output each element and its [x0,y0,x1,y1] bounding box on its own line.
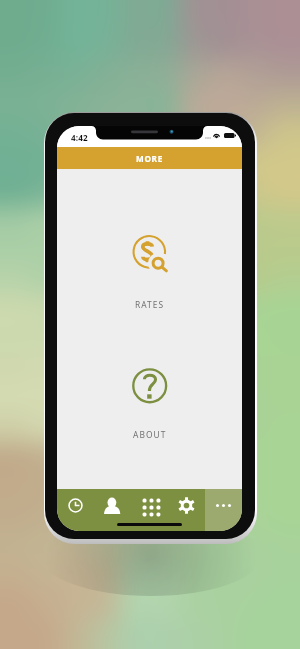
staticText: RATES [135,299,165,310]
button[interactable]: ABOUT [102,365,198,443]
button[interactable]: More [205,489,242,531]
staticText: 4:42 [71,132,88,143]
staticText: ABOUT [133,429,167,440]
button[interactable]: RATES [102,233,198,313]
staticText: MORE [136,153,163,164]
button[interactable]: Recent [57,489,94,531]
button[interactable]: Profile [94,489,131,531]
button[interactable]: MORE [57,147,242,169]
button[interactable]: Apps [131,489,168,531]
button[interactable]: Settings [168,489,205,531]
